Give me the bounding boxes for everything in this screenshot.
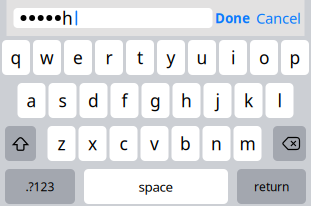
button[interactable]: n	[202, 126, 230, 161]
staticText: f	[121, 89, 127, 112]
staticText: p	[289, 46, 300, 69]
button[interactable]: s	[48, 83, 76, 118]
button[interactable]: u	[188, 40, 216, 75]
staticText: z	[57, 132, 65, 155]
button[interactable]: i	[219, 40, 247, 75]
staticText: r	[105, 46, 112, 69]
button[interactable]: Delete	[273, 126, 306, 161]
staticText: t	[137, 46, 143, 69]
button[interactable]: l	[265, 83, 293, 118]
staticText: u	[196, 46, 207, 69]
staticText: k	[244, 89, 253, 112]
staticText: w	[40, 46, 54, 69]
staticText: x	[88, 132, 97, 155]
button[interactable]: return	[237, 169, 306, 204]
staticText: h	[181, 89, 192, 112]
button[interactable]: f	[110, 83, 138, 118]
button[interactable]: q	[2, 40, 30, 75]
button[interactable]: g	[141, 83, 169, 118]
staticText: y	[166, 46, 175, 69]
button[interactable]: m	[233, 126, 261, 161]
button[interactable]: d	[79, 83, 107, 118]
button[interactable]: space	[84, 169, 228, 204]
button[interactable]: o	[250, 40, 278, 75]
staticText: e	[73, 46, 83, 69]
button[interactable]: w	[33, 40, 61, 75]
staticText: Done	[215, 9, 250, 27]
staticText: .?123	[25, 178, 54, 194]
button[interactable]: Shift	[5, 126, 36, 161]
staticText: s	[58, 89, 66, 112]
button[interactable]: j	[203, 83, 231, 118]
button[interactable]: e	[64, 40, 92, 75]
button[interactable]: Done	[212, 6, 252, 30]
button[interactable]: b	[171, 126, 199, 161]
button[interactable]: Cancel	[252, 6, 304, 30]
staticText: a	[26, 89, 36, 112]
staticText: o	[259, 46, 269, 69]
button[interactable]: y	[157, 40, 185, 75]
staticText: g	[150, 89, 161, 112]
button[interactable]: c	[109, 126, 137, 161]
staticText: m	[239, 132, 255, 155]
staticText: d	[88, 89, 99, 112]
staticText: space	[138, 178, 173, 195]
staticText: i	[231, 46, 235, 69]
button[interactable]: z	[47, 126, 75, 161]
button[interactable]: v	[140, 126, 168, 161]
staticText: q	[10, 46, 21, 69]
staticText: v	[150, 132, 159, 155]
button[interactable]: h	[172, 83, 200, 118]
staticText: return	[254, 178, 289, 194]
button[interactable]: a	[17, 83, 45, 118]
staticText: b	[180, 132, 191, 155]
button[interactable]: k	[234, 83, 262, 118]
staticText: c	[119, 132, 127, 155]
button[interactable]: t	[126, 40, 154, 75]
staticText: j	[215, 89, 219, 112]
button[interactable]: Password field	[13, 8, 212, 28]
button[interactable]: r	[95, 40, 123, 75]
staticText: n	[211, 132, 222, 155]
button[interactable]: x	[78, 126, 106, 161]
staticText: h	[62, 6, 73, 29]
button[interactable]: .?123	[5, 169, 75, 204]
button[interactable]: p	[281, 40, 309, 75]
staticText: Cancel	[256, 8, 301, 28]
staticText: l	[277, 89, 281, 112]
